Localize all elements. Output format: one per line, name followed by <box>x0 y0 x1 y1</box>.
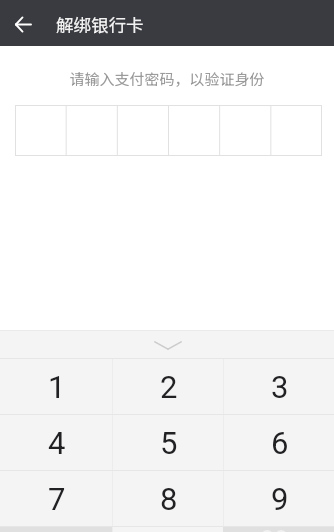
button[interactable]: 3 <box>223 359 334 414</box>
staticText: 7 <box>48 481 66 517</box>
button[interactable]: 2 <box>112 359 223 414</box>
button[interactable]: 6 <box>223 415 334 470</box>
staticText: 6 <box>271 425 289 461</box>
staticText: 请输入支付密码，以验证身份 <box>0 68 334 90</box>
button[interactable]: Back <box>0 0 46 46</box>
button[interactable]: 1 <box>0 359 112 414</box>
staticText: 4 <box>48 425 66 461</box>
button[interactable]: 8 <box>112 471 223 526</box>
button[interactable]: 7 <box>0 471 112 526</box>
button[interactable]: 9 <box>223 471 334 526</box>
staticText: 5 <box>160 425 178 461</box>
staticText: 1 <box>48 369 66 405</box>
staticText: 8 <box>160 481 178 517</box>
button[interactable]: 4 <box>0 415 112 470</box>
staticText: 3 <box>271 369 289 405</box>
staticText: 2 <box>160 369 178 405</box>
button[interactable]: 5 <box>112 415 223 470</box>
staticText: 9 <box>271 481 289 517</box>
staticText: 解绑银行卡 <box>56 12 144 37</box>
